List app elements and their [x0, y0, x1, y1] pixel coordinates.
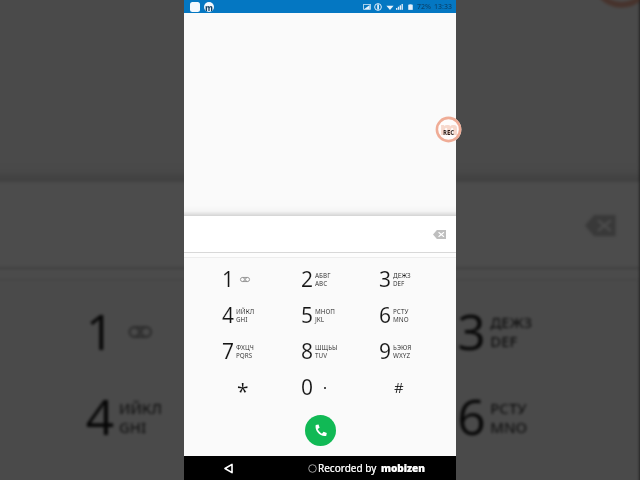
button[interactable]: Back [219, 459, 237, 477]
staticText: TUV [315, 351, 328, 360]
staticText: 6 [457, 383, 488, 451]
staticText: 7 [222, 337, 235, 366]
button[interactable]: 4 [41, 373, 228, 458]
staticText: ДЕЖЗ [490, 312, 533, 333]
staticText: ШЩЬЫ [315, 343, 338, 352]
button[interactable]: # [360, 369, 438, 405]
button[interactable]: Mobizen recorder [435, 116, 462, 143]
button[interactable]: 6 [412, 373, 597, 458]
button[interactable]: Call [305, 415, 336, 446]
staticText: PQRS [236, 351, 253, 360]
staticText: 13:33 [434, 2, 452, 12]
button[interactable]: 8 [282, 333, 360, 369]
button[interactable]: 4 [203, 297, 282, 333]
staticText: ЬЭЮЯ [393, 343, 412, 352]
staticText: 5 [301, 301, 314, 330]
staticText: REC [443, 129, 455, 137]
staticText: GHI [236, 315, 248, 324]
staticText: АБВГ [315, 271, 331, 280]
staticText: РСТУ [490, 397, 528, 418]
button[interactable]: 0 [282, 369, 360, 405]
button[interactable]: Mobizen recorder [590, 0, 640, 9]
staticText: ФХЦЧ [236, 343, 254, 352]
button[interactable]: 5 [282, 297, 360, 333]
staticText: GHI [119, 416, 147, 437]
staticText: JKL [315, 315, 325, 324]
staticText: * [237, 377, 249, 406]
button[interactable]: 2 [282, 261, 360, 297]
button[interactable]: 8 [228, 458, 412, 480]
button[interactable]: 9 [360, 333, 438, 369]
staticText: 3 [379, 265, 392, 294]
button[interactable]: 3 [360, 261, 438, 297]
button[interactable]: * [203, 369, 282, 405]
button[interactable]: 6 [360, 297, 438, 333]
staticText: MNO [490, 416, 528, 437]
staticText: МНОП [315, 307, 336, 316]
staticText: 4 [222, 301, 235, 330]
staticText: 72% [417, 2, 431, 12]
staticText: 1 [222, 265, 235, 294]
staticText: МНОП [306, 397, 355, 418]
staticText: m [205, 2, 213, 12]
button[interactable]: 7 [203, 333, 282, 369]
staticText: 6 [379, 301, 392, 330]
staticText: РСТУ [393, 307, 409, 316]
staticText: 3 [457, 298, 488, 366]
staticText: ДЕЖЗ [393, 271, 411, 280]
staticText: 4 [86, 383, 117, 451]
staticText: 2 [273, 298, 303, 366]
button[interactable]: 3 [412, 288, 597, 373]
staticText: АБВГ [306, 312, 344, 333]
staticText: 8 [301, 337, 314, 366]
staticText: m [440, 116, 458, 141]
staticText: 1 [86, 298, 117, 366]
staticText: ИЙКЛ [236, 307, 255, 316]
staticText: 5 [273, 383, 303, 451]
staticText: JKL [306, 416, 329, 437]
staticText: m [601, 0, 640, 4]
staticText: 0 [301, 373, 314, 402]
staticText: DEF [393, 279, 405, 288]
button[interactable]: 7 [41, 458, 228, 480]
staticText: MNO [393, 315, 409, 324]
button[interactable]: 5 [228, 373, 412, 458]
staticText: WXYZ [393, 351, 411, 360]
staticText: ИЙКЛ [119, 397, 164, 418]
button[interactable]: Backspace [573, 198, 625, 250]
button[interactable]: 1 [41, 288, 228, 373]
staticText: mobizen [381, 461, 425, 475]
button[interactable]: 9 [412, 458, 597, 480]
staticText: 9 [379, 337, 392, 366]
staticText: DEF [490, 331, 519, 352]
button[interactable]: 1 [203, 261, 282, 297]
staticText: Recorded by [318, 461, 377, 475]
button[interactable]: Backspace [428, 223, 450, 245]
button[interactable]: 2 [228, 288, 412, 373]
staticText: 2 [301, 265, 314, 294]
staticText: ABC [315, 279, 328, 288]
staticText: # [394, 377, 404, 397]
staticText: ABC [306, 331, 336, 352]
